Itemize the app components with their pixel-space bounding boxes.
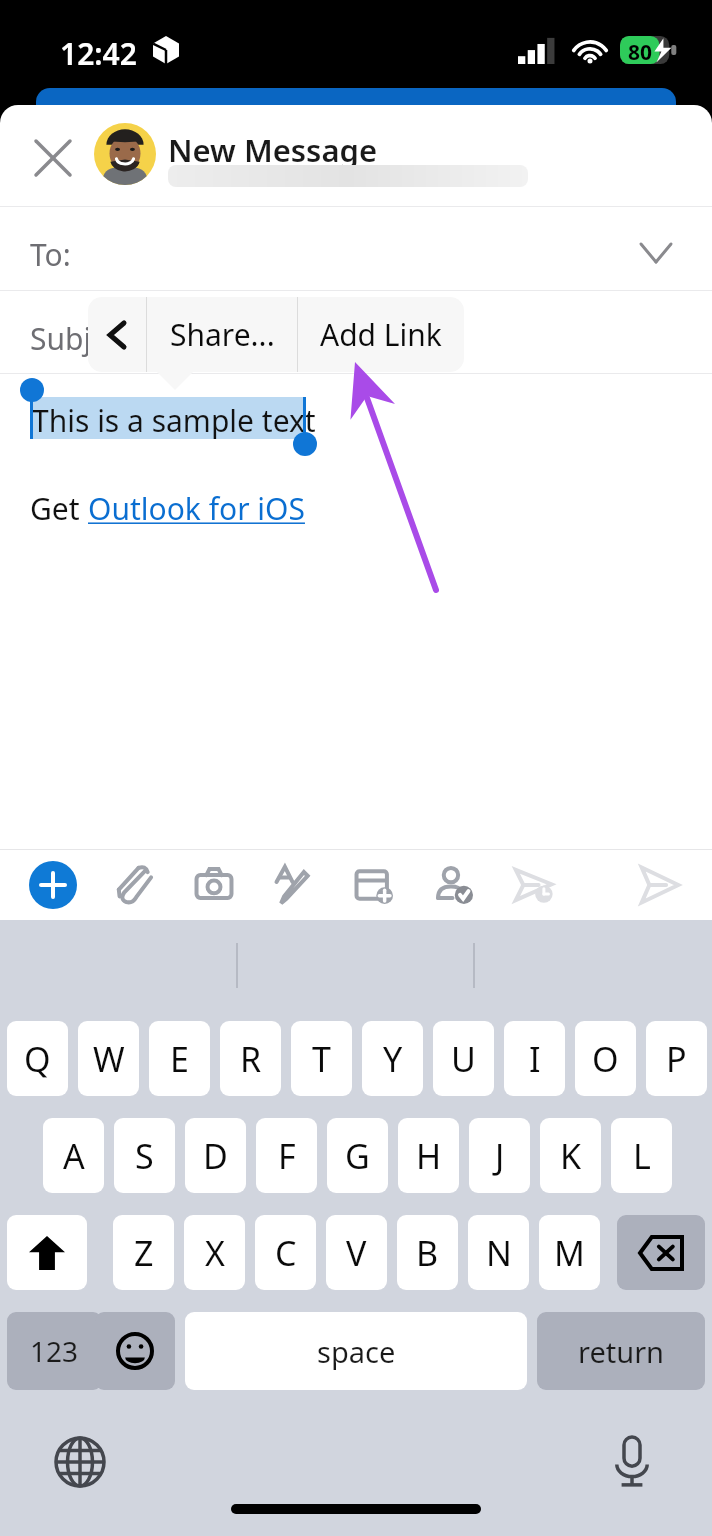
button[interactable]: J (469, 1118, 530, 1193)
button[interactable]: H (398, 1118, 459, 1193)
button[interactable]: F (256, 1118, 317, 1193)
staticText: New Message (168, 129, 378, 171)
staticText: E (170, 1036, 189, 1082)
staticText: D (203, 1133, 228, 1179)
button[interactable]: L (611, 1118, 672, 1193)
button[interactable]: Add (29, 861, 77, 909)
staticText: N (486, 1230, 512, 1276)
button[interactable]: Q (7, 1021, 68, 1096)
button[interactable]: Send (634, 859, 686, 911)
button[interactable]: K (540, 1118, 601, 1193)
button[interactable]: Change keyboard (48, 1430, 112, 1494)
staticText: return (578, 1332, 665, 1371)
staticText: space (317, 1332, 396, 1371)
staticText: W (93, 1036, 125, 1082)
button[interactable]: N (468, 1215, 529, 1290)
staticText: V (346, 1230, 367, 1276)
button[interactable]: A (43, 1118, 104, 1193)
staticText: B (416, 1230, 439, 1276)
staticText: R (240, 1036, 262, 1082)
staticText: Add Link (320, 314, 442, 355)
button[interactable]: Attach (108, 859, 160, 911)
button[interactable]: return (537, 1312, 705, 1390)
button[interactable]: B (397, 1215, 458, 1290)
button[interactable]: W (78, 1021, 139, 1096)
button[interactable]: P (646, 1021, 707, 1096)
button[interactable]: Z (113, 1215, 174, 1290)
staticText: 80 (628, 38, 653, 67)
staticText: To: (30, 234, 71, 275)
button[interactable]: D (185, 1118, 246, 1193)
button[interactable]: X (184, 1215, 245, 1290)
staticText: Y (383, 1036, 403, 1082)
button[interactable]: Dictate (600, 1430, 664, 1494)
button[interactable]: space (185, 1312, 527, 1390)
button[interactable]: Y (362, 1021, 423, 1096)
button[interactable]: Availability (428, 859, 480, 911)
staticText: X (205, 1230, 225, 1276)
button[interactable]: Outlook for iOS (88, 488, 305, 529)
staticText: Q (24, 1036, 51, 1082)
button[interactable]: Add Link (298, 297, 464, 372)
staticText: S (135, 1133, 154, 1179)
staticText: M (554, 1230, 585, 1276)
button[interactable]: Shift (7, 1215, 87, 1290)
button[interactable]: T (291, 1021, 352, 1096)
staticText: C (275, 1230, 297, 1276)
button[interactable]: V (326, 1215, 387, 1290)
staticText: 12:42 (60, 33, 137, 74)
staticText: O (592, 1036, 619, 1082)
button[interactable]: Close (20, 125, 86, 191)
button[interactable]: I (504, 1021, 565, 1096)
button[interactable]: 123 (7, 1312, 102, 1390)
button[interactable]: E (149, 1021, 210, 1096)
button[interactable]: Account (94, 123, 156, 185)
button[interactable]: Camera (188, 859, 240, 911)
button[interactable]: Share... (147, 297, 297, 372)
button[interactable]: C (255, 1215, 316, 1290)
button[interactable]: Schedule send (508, 859, 560, 911)
button[interactable]: Add file (348, 859, 400, 911)
staticText: U (451, 1036, 476, 1082)
button[interactable]: O (575, 1021, 636, 1096)
staticText: Get (30, 488, 88, 529)
button[interactable]: U (433, 1021, 494, 1096)
staticText: Subj (30, 318, 92, 359)
staticText: P (666, 1036, 687, 1082)
staticText: F (278, 1133, 296, 1179)
staticText: This is a sample text (32, 400, 316, 441)
button[interactable]: S (114, 1118, 175, 1193)
button[interactable]: R (220, 1021, 281, 1096)
button[interactable]: M (539, 1215, 600, 1290)
button[interactable]: G (327, 1118, 388, 1193)
button[interactable]: Format (268, 859, 320, 911)
button[interactable]: Backspace (617, 1215, 705, 1290)
staticText: H (416, 1133, 442, 1179)
staticText: J (495, 1133, 505, 1179)
staticText: G (345, 1133, 370, 1179)
staticText: I (529, 1036, 541, 1082)
staticText: K (560, 1133, 582, 1179)
staticText: 123 (30, 1332, 79, 1370)
button[interactable]: Expand recipients (628, 225, 684, 281)
staticText: T (312, 1036, 331, 1082)
staticText: Z (134, 1230, 154, 1276)
staticText: L (633, 1133, 651, 1179)
button[interactable]: Emoji (95, 1312, 175, 1390)
staticText: Share... (170, 314, 275, 355)
staticText: A (63, 1133, 85, 1179)
button[interactable]: Previous (88, 297, 146, 372)
